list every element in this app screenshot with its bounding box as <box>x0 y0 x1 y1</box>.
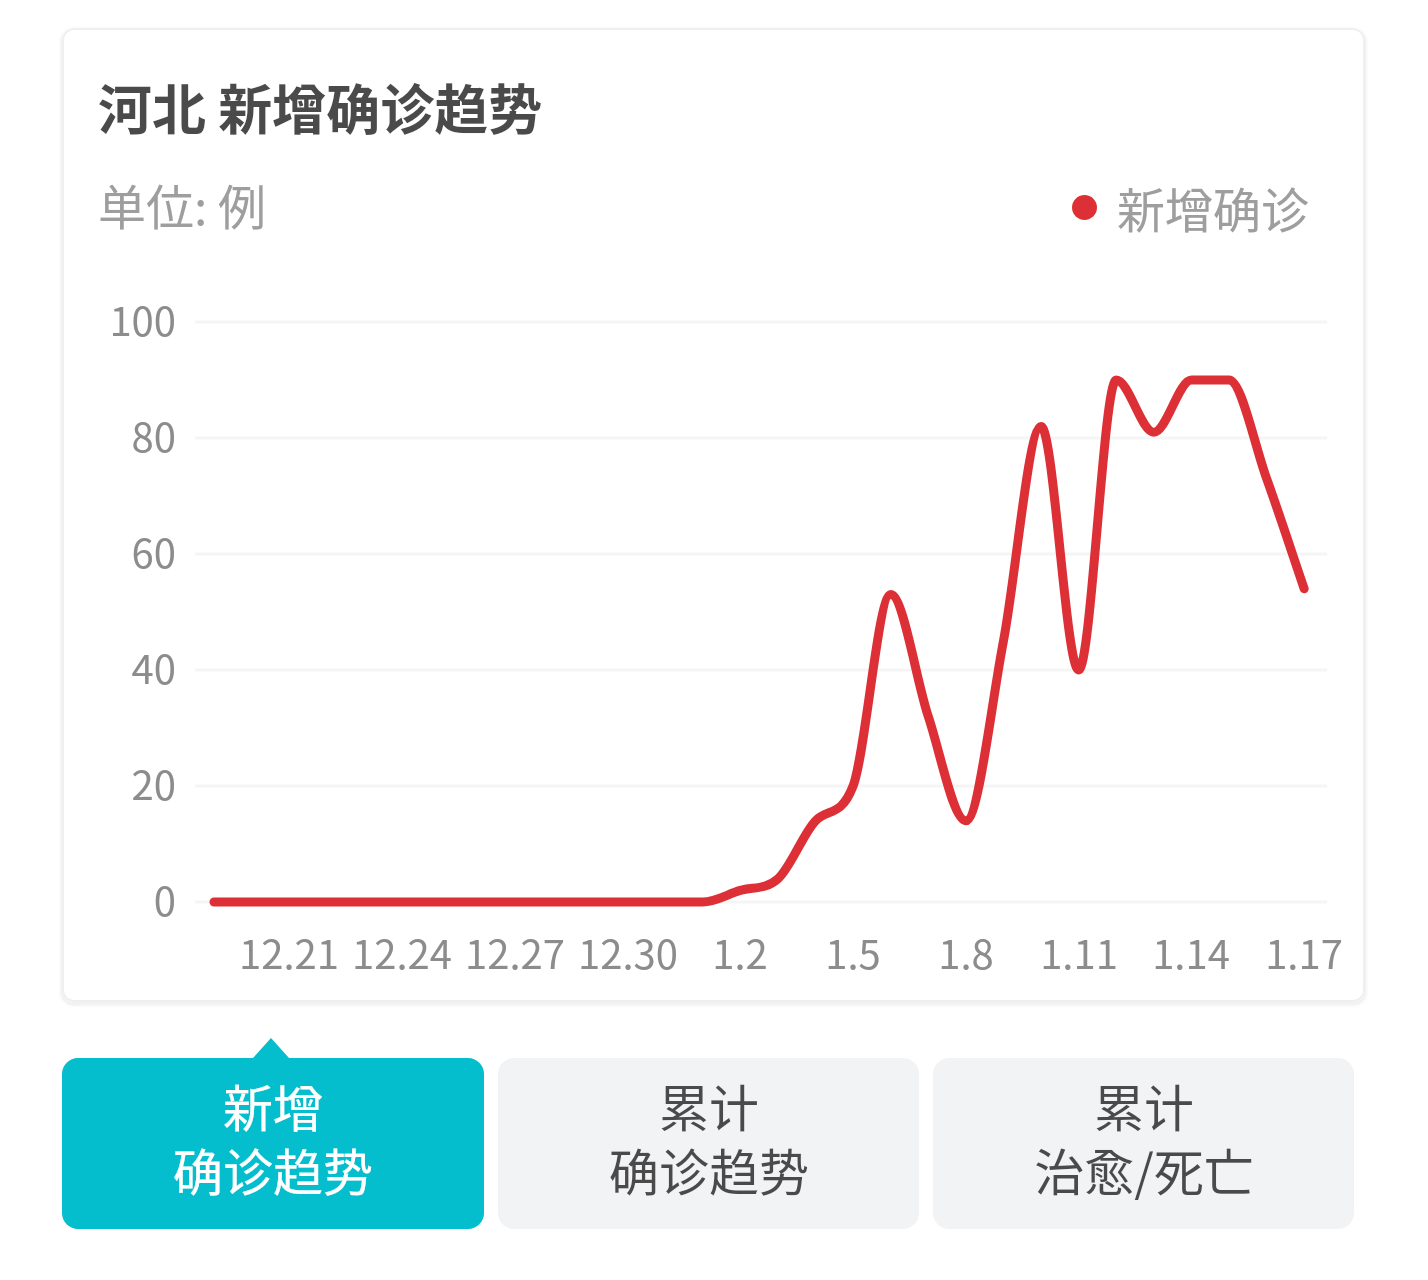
staticText: 12.21 <box>239 923 339 981</box>
staticText: 12.24 <box>352 923 452 981</box>
button[interactable]: 累计 确诊趋势 <box>498 1058 919 1229</box>
button[interactable]: 累计 治愈/死亡 <box>933 1058 1354 1229</box>
other: Legend marker <box>1072 195 1097 220</box>
staticText: 新增 确诊趋势 <box>173 1069 373 1206</box>
staticText: 12.27 <box>465 923 565 981</box>
staticText: 河北 新增确诊趋势 <box>98 67 543 145</box>
staticText: 1.11 <box>1040 923 1118 981</box>
staticText: 累计 确诊趋势 <box>609 1069 809 1206</box>
staticText: 80 <box>131 406 176 464</box>
staticText: 1.5 <box>825 923 881 981</box>
staticText: 1.8 <box>938 923 994 981</box>
staticText: 1.17 <box>1265 923 1343 981</box>
staticText: 累计 治愈/死亡 <box>1034 1069 1254 1206</box>
staticText: 60 <box>131 522 176 580</box>
staticText: 1.14 <box>1152 923 1230 981</box>
staticText: 单位: 例 <box>98 169 267 239</box>
other: Selected tab indicator <box>253 1038 289 1058</box>
staticText: 新增确诊 <box>1117 172 1310 242</box>
staticText: 40 <box>131 638 176 696</box>
staticText: 100 <box>109 290 176 348</box>
button[interactable]: 新增 确诊趋势 <box>62 1058 484 1229</box>
staticText: 20 <box>131 754 176 812</box>
staticText: 12.30 <box>578 923 678 981</box>
staticText: 1.2 <box>712 923 768 981</box>
staticText: 0 <box>153 870 176 928</box>
